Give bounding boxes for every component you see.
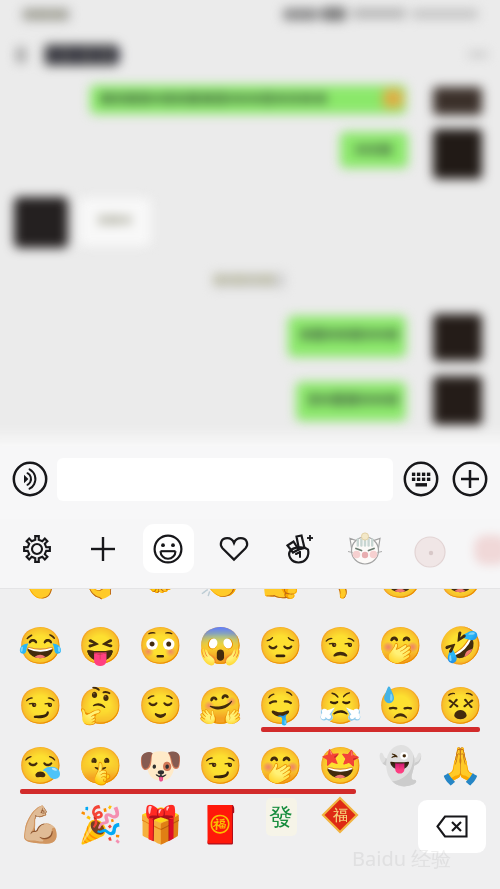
button[interactable]: Add sticker: [79, 525, 127, 573]
staticText: 😂: [18, 625, 63, 667]
button[interactable]: Voice input: [8, 457, 52, 501]
button[interactable]: 👻: [370, 736, 430, 796]
staticText: 😏: [198, 745, 243, 787]
staticText: 👏: [198, 589, 243, 601]
staticText: 🎁: [138, 804, 183, 846]
button[interactable]: 💪🏼: [10, 795, 70, 855]
staticText: 😌: [138, 685, 183, 727]
staticText: 😏: [18, 685, 63, 727]
button[interactable]: Settings: [13, 525, 61, 573]
staticText: 🤤: [258, 685, 303, 727]
staticText: 😪: [18, 745, 63, 787]
staticText: 🤫: [78, 745, 123, 787]
button[interactable]: 🙏: [430, 736, 490, 796]
staticText: 🤔: [78, 685, 123, 727]
button[interactable]: Favourites: [210, 525, 258, 573]
staticText: 🤗: [198, 685, 243, 727]
staticText: 🤣: [438, 625, 483, 667]
button[interactable]: 🧧: [190, 795, 250, 855]
staticText: 🤩: [318, 745, 363, 787]
staticText: Baidu 经验: [352, 845, 452, 872]
staticText: 👻: [378, 745, 423, 787]
button[interactable]: 😀: [370, 589, 430, 610]
button[interactable]: 😓: [370, 676, 430, 736]
button[interactable]: 🤭: [250, 736, 310, 796]
staticText: 💪🏼: [18, 804, 63, 846]
button[interactable]: 🤫: [70, 736, 130, 796]
button[interactable]: 😌: [130, 676, 190, 736]
staticText: 😔: [258, 625, 303, 667]
button[interactable]: 🎉: [70, 795, 130, 855]
staticText: 🤚: [18, 589, 63, 601]
button[interactable]: 😵: [430, 676, 490, 736]
button[interactable]: 🤚: [10, 589, 70, 610]
button[interactable]: 🤝: [130, 589, 190, 610]
button[interactable]: 😒: [310, 616, 370, 676]
staticText: 🎉: [78, 804, 123, 846]
button[interactable]: Mahjong tile sticker: [264, 797, 298, 837]
staticText: 🙏: [438, 745, 483, 787]
button[interactable]: 👏: [190, 589, 250, 610]
staticText: 🤭: [378, 625, 423, 667]
staticText: 福: [333, 806, 348, 825]
button[interactable]: 🤔: [70, 676, 130, 736]
button[interactable]: 🎁: [130, 795, 190, 855]
button[interactable]: 🐶: [130, 736, 190, 796]
staticText: 發: [269, 802, 293, 832]
staticText: 😀: [378, 589, 423, 601]
button[interactable]: Sticker pack: [408, 529, 452, 573]
staticText: 😵: [438, 685, 483, 727]
button[interactable]: 😂: [10, 616, 70, 676]
staticText: 😤: [318, 685, 363, 727]
staticText: 😝: [78, 625, 123, 667]
button[interactable]: Gestures: [275, 525, 323, 573]
staticText: 🤭: [258, 745, 303, 787]
button[interactable]: 😱: [190, 616, 250, 676]
staticText: 🧧: [198, 804, 243, 846]
staticText: 👌: [78, 589, 123, 601]
button[interactable]: 🤗: [190, 676, 250, 736]
button[interactable]: 🤭: [370, 616, 430, 676]
button[interactable]: 🤩: [310, 736, 370, 796]
button[interactable]: 😏: [190, 736, 250, 796]
staticText: 👎: [318, 589, 363, 601]
button[interactable]: 🤣: [430, 616, 490, 676]
button[interactable]: 🤤: [250, 676, 310, 736]
button[interactable]: 😏: [10, 676, 70, 736]
button[interactable]: Cat stickers: [341, 525, 389, 573]
staticText: 😒: [318, 625, 363, 667]
button[interactable]: 😳: [130, 616, 190, 676]
button[interactable]: 😪: [10, 736, 70, 796]
button[interactable]: 👎: [310, 589, 370, 610]
button[interactable]: 😃: [430, 589, 490, 610]
button[interactable]: Delete: [418, 800, 486, 853]
staticText: 👍: [258, 589, 303, 601]
button[interactable]: 👌: [70, 589, 130, 610]
button[interactable]: Fu charm sticker: [320, 795, 360, 835]
button[interactable]: Emoji: [144, 525, 192, 573]
staticText: 😳: [138, 625, 183, 667]
staticText: 🤝: [138, 589, 183, 601]
button[interactable]: Keyboard: [399, 457, 443, 501]
button[interactable]: 😔: [250, 616, 310, 676]
button[interactable]: 😤: [310, 676, 370, 736]
staticText: 😃: [438, 589, 483, 601]
staticText: 😓: [378, 685, 423, 727]
button[interactable]: 😝: [70, 616, 130, 676]
staticText: 😱: [198, 625, 243, 667]
staticText: 🐶: [138, 745, 183, 787]
button[interactable]: 👍: [250, 589, 310, 610]
button[interactable]: More options: [448, 457, 492, 501]
